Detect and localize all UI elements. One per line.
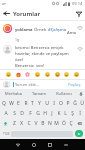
staticText: X xyxy=(20,120,23,127)
button[interactable]: Ş xyxy=(69,108,76,118)
staticText: U xyxy=(45,100,49,107)
button[interactable]: Voice input xyxy=(76,89,85,98)
button[interactable]: Filter xyxy=(72,7,85,20)
staticText: Ç xyxy=(69,120,73,127)
staticText: #Çalışma xyxy=(48,27,67,33)
button[interactable]: P xyxy=(64,98,71,108)
staticText: O xyxy=(59,100,63,107)
staticText: Y xyxy=(38,100,41,107)
button[interactable]: Emoji reaction xyxy=(5,71,12,78)
button[interactable]: Ö xyxy=(60,118,67,128)
button[interactable]: H xyxy=(41,108,48,118)
button[interactable]: K xyxy=(55,108,62,118)
button[interactable]: Emoji reaction xyxy=(63,71,70,78)
button[interactable]: C xyxy=(25,118,32,128)
staticText: P xyxy=(66,100,70,107)
button[interactable]: Q xyxy=(0,98,8,108)
staticText: H xyxy=(43,110,47,117)
staticText: Paylaş xyxy=(68,82,81,87)
button[interactable]: B xyxy=(39,118,46,128)
button[interactable]: Backspace xyxy=(74,118,85,128)
staticText: Tamam xyxy=(32,91,46,96)
button[interactable]: Back xyxy=(10,139,26,150)
staticText: W xyxy=(9,100,14,107)
button[interactable]: Back xyxy=(0,7,13,20)
button[interactable]: M xyxy=(53,118,60,128)
button[interactable]: Emoji reaction xyxy=(54,71,61,78)
staticText: I xyxy=(53,100,55,107)
staticText: L xyxy=(64,110,67,117)
staticText: kesimci Benzersiz emçek xyxy=(15,45,64,51)
staticText: Örnek xyxy=(34,27,48,33)
staticText: M xyxy=(54,120,59,127)
staticText: yoklama xyxy=(15,27,34,33)
staticText: J xyxy=(51,110,53,117)
button[interactable]: V xyxy=(32,118,39,128)
button[interactable]: G xyxy=(34,108,41,118)
button[interactable]: Switch keyboard xyxy=(58,139,74,150)
button[interactable]: Send xyxy=(75,130,83,137)
button[interactable]: Like xyxy=(76,24,83,31)
button[interactable]: Ü xyxy=(78,98,85,108)
staticText: Z xyxy=(13,120,16,127)
button[interactable]: J xyxy=(48,108,55,118)
staticText: F xyxy=(29,110,32,117)
button[interactable]: kesimci Benzersiz emçek xyxy=(0,45,85,69)
button[interactable]: Emoji reaction xyxy=(15,71,22,78)
button[interactable]: yoklama xyxy=(0,21,85,42)
button[interactable]: L xyxy=(62,108,69,118)
staticText: hazırlar, ekinde ve paylaşım özel xyxy=(15,51,76,63)
button[interactable]: Recents xyxy=(42,139,58,150)
button[interactable]: Ç xyxy=(67,118,74,128)
button[interactable]: A xyxy=(2,108,10,118)
button[interactable]: Z xyxy=(11,118,18,128)
staticText: R xyxy=(24,100,28,107)
staticText: İ xyxy=(79,110,81,117)
button[interactable]: Y xyxy=(36,98,43,108)
button[interactable]: I xyxy=(50,98,57,108)
staticText: 1g xyxy=(15,37,20,42)
button[interactable]: Emoji reaction xyxy=(44,71,51,78)
staticText: C xyxy=(27,120,31,127)
button[interactable]: S xyxy=(10,108,18,118)
staticText: S xyxy=(13,110,16,117)
button[interactable]: Ğ xyxy=(71,98,78,108)
button[interactable]: N xyxy=(46,118,53,128)
staticText: V xyxy=(34,120,38,127)
staticText: 09:14 xyxy=(72,1,83,6)
staticText: Ğ xyxy=(73,100,77,107)
button[interactable]: O xyxy=(57,98,64,108)
button[interactable]: W xyxy=(8,98,15,108)
button[interactable]: Emoji reaction xyxy=(34,71,41,78)
button[interactable]: D xyxy=(18,108,26,118)
staticText: G xyxy=(36,110,40,117)
staticText: A xyxy=(4,110,8,117)
button[interactable]: Paylaş xyxy=(67,81,82,88)
button[interactable]: Shift xyxy=(0,118,11,128)
staticText: Ama xyxy=(67,24,76,36)
button[interactable]: E xyxy=(15,98,22,108)
button[interactable]: Kullanıcı xyxy=(51,89,76,98)
staticText: Benzersiz son! xyxy=(15,63,45,69)
button[interactable]: R xyxy=(22,98,29,108)
button[interactable]: Emoji reaction xyxy=(24,71,31,78)
button[interactable]: F xyxy=(26,108,34,118)
staticText: D xyxy=(20,110,24,117)
button[interactable]: İ xyxy=(76,108,83,118)
button[interactable]: T xyxy=(29,98,36,108)
button[interactable]: ?123 xyxy=(2,130,10,137)
button[interactable]: U xyxy=(43,98,50,108)
button[interactable]: Like xyxy=(76,45,83,52)
button[interactable]: X xyxy=(18,118,25,128)
button[interactable]: Tamam xyxy=(26,89,51,98)
staticText: N xyxy=(48,120,52,127)
staticText: Yorum ekle... xyxy=(15,82,40,87)
button[interactable]: Merhaba xyxy=(0,89,26,98)
button[interactable]: Home xyxy=(26,139,42,150)
staticText: Merhaba xyxy=(5,91,22,96)
staticText: Yorumlar xyxy=(13,10,41,18)
staticText: ?123 xyxy=(3,132,10,136)
button[interactable]: Emoji reaction xyxy=(73,71,80,78)
staticText: K xyxy=(57,110,61,117)
